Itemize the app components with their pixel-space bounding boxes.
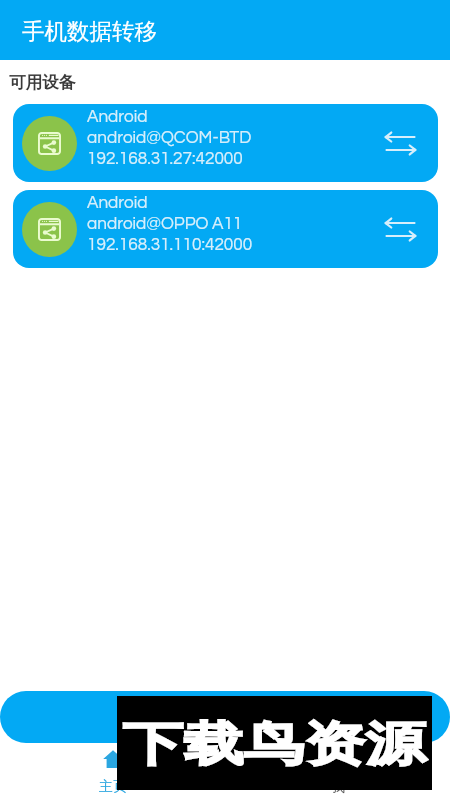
- button[interactable]: Android android@QCOM-BTD 192.168.31.27:4…: [13, 104, 438, 182]
- other: Transfer: [384, 216, 417, 243]
- staticText: 下载鸟资源: [122, 715, 427, 774]
- staticText: 可用设备: [9, 72, 75, 93]
- staticText: Android android@QCOM-BTD 192.168.31.27:4…: [87, 106, 252, 169]
- staticText: 主页: [99, 778, 127, 796]
- staticText: 手机数据转移: [22, 17, 157, 45]
- staticText: 我: [331, 778, 345, 796]
- button[interactable]: 我: [225, 748, 450, 800]
- staticText: Android android@OPPO A11 192.168.31.110:…: [87, 192, 253, 255]
- button[interactable]: Scan: [0, 691, 450, 743]
- other: Transfer: [384, 130, 417, 157]
- button[interactable]: 主页: [0, 748, 225, 800]
- button[interactable]: Android android@OPPO A11 192.168.31.110:…: [13, 190, 438, 268]
